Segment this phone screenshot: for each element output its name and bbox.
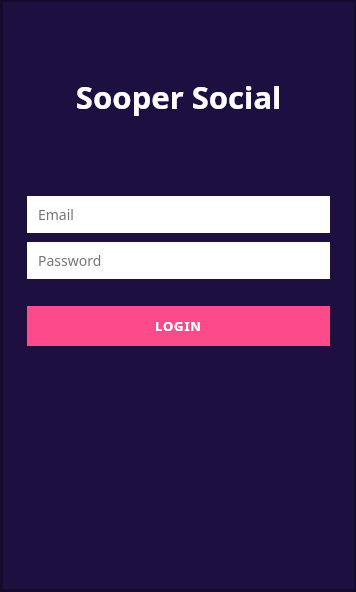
- button[interactable]: LOGIN: [27, 306, 330, 346]
- staticText: Password: [38, 251, 102, 270]
- staticText: LOGIN: [155, 317, 202, 335]
- staticText: Sooper Social: [3, 76, 354, 118]
- button[interactable]: Email: [27, 196, 330, 233]
- button[interactable]: Password: [27, 242, 330, 279]
- staticText: Email: [38, 205, 74, 224]
